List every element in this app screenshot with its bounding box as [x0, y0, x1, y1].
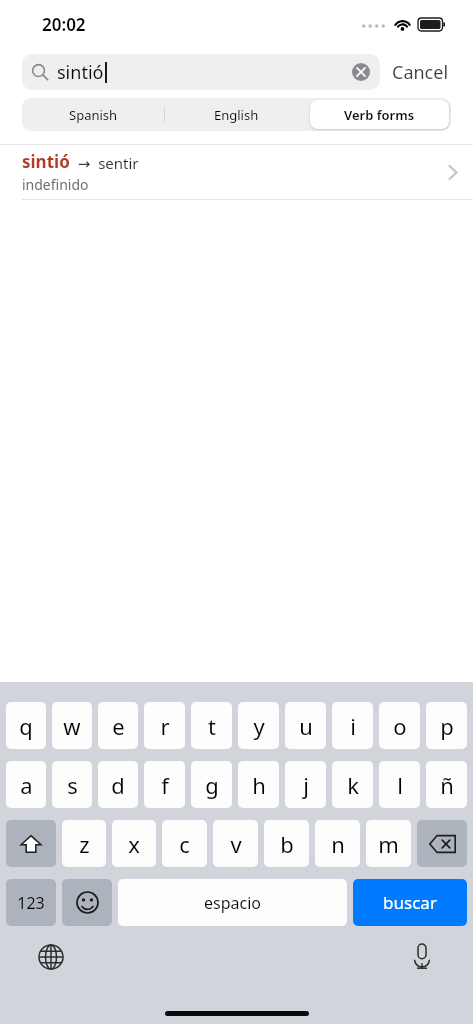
staticText: z — [79, 829, 90, 859]
staticText: b — [280, 829, 294, 859]
staticText: m — [378, 829, 399, 859]
button[interactable]: b — [264, 820, 309, 867]
button[interactable]: d — [98, 761, 138, 808]
button[interactable]: e — [98, 702, 138, 749]
staticText: ñ — [440, 770, 454, 800]
staticText: r — [160, 711, 170, 741]
staticText: v — [230, 829, 242, 859]
button[interactable]: g — [191, 761, 232, 808]
button[interactable]: ñ — [426, 761, 467, 808]
staticText: w — [63, 711, 81, 741]
button[interactable]: y — [238, 702, 279, 749]
staticText: d — [111, 770, 125, 800]
staticText: Verb forms — [344, 106, 415, 124]
button[interactable]: q — [6, 702, 46, 749]
staticText: espacio — [204, 892, 261, 914]
button[interactable]: Spanish — [24, 100, 163, 129]
staticText: 20:02 — [42, 13, 86, 36]
button[interactable]: w — [52, 702, 92, 749]
staticText: e — [112, 711, 125, 741]
staticText: l — [397, 770, 403, 800]
button[interactable]: 123 — [6, 879, 56, 926]
staticText: sintió — [57, 60, 104, 85]
staticText: English — [214, 106, 259, 124]
button[interactable]: p — [426, 702, 467, 749]
button[interactable]: Change keyboard language — [34, 940, 68, 974]
staticText: → sentir — [70, 153, 139, 173]
button[interactable]: l — [379, 761, 420, 808]
staticText: buscar — [383, 891, 437, 914]
staticText: y — [253, 711, 265, 741]
button[interactable]: Backspace — [417, 820, 467, 867]
button[interactable]: z — [62, 820, 106, 867]
staticText: Cancel — [392, 60, 449, 85]
button[interactable]: Clear text — [351, 62, 371, 82]
staticText: x — [128, 829, 140, 859]
button[interactable]: Verb forms — [310, 100, 449, 129]
staticText: a — [20, 770, 33, 800]
button[interactable]: a — [6, 761, 46, 808]
button[interactable]: x — [112, 820, 156, 867]
button[interactable]: o — [379, 702, 420, 749]
staticText: u — [299, 711, 313, 741]
button[interactable]: s — [52, 761, 92, 808]
button[interactable]: t — [191, 702, 232, 749]
button[interactable]: sintió — [22, 54, 380, 90]
button[interactable]: c — [162, 820, 207, 867]
button[interactable]: i — [332, 702, 373, 749]
staticText: o — [393, 711, 407, 741]
button[interactable]: espacio — [118, 879, 347, 926]
button[interactable]: sintió — [0, 145, 473, 199]
button[interactable]: English — [167, 100, 306, 129]
staticText: i — [350, 711, 356, 741]
button[interactable]: buscar — [353, 879, 467, 926]
button[interactable]: Dictate — [405, 940, 439, 974]
staticText: 123 — [17, 892, 45, 914]
button[interactable]: k — [332, 761, 373, 808]
button[interactable]: Emoji — [62, 879, 112, 926]
staticText: s — [67, 770, 78, 800]
staticText: t — [208, 711, 216, 741]
button[interactable]: j — [285, 761, 326, 808]
button[interactable]: v — [213, 820, 258, 867]
staticText: k — [347, 770, 359, 800]
staticText: q — [19, 711, 33, 741]
button[interactable]: h — [238, 761, 279, 808]
staticText: sintió — [22, 150, 70, 173]
staticText: n — [331, 829, 345, 859]
staticText: h — [252, 770, 266, 800]
staticText: Spanish — [69, 106, 118, 124]
button[interactable]: f — [144, 761, 185, 808]
staticText: j — [303, 770, 309, 800]
staticText: c — [179, 829, 190, 859]
button[interactable]: Cancel — [380, 60, 451, 85]
staticText: g — [205, 770, 219, 800]
staticText: p — [440, 711, 454, 741]
staticText: indefinido — [22, 175, 89, 194]
button[interactable]: Shift — [6, 820, 56, 867]
button[interactable]: u — [285, 702, 326, 749]
button[interactable]: r — [144, 702, 185, 749]
button[interactable]: n — [315, 820, 360, 867]
button[interactable]: m — [366, 820, 411, 867]
staticText: f — [161, 770, 169, 800]
